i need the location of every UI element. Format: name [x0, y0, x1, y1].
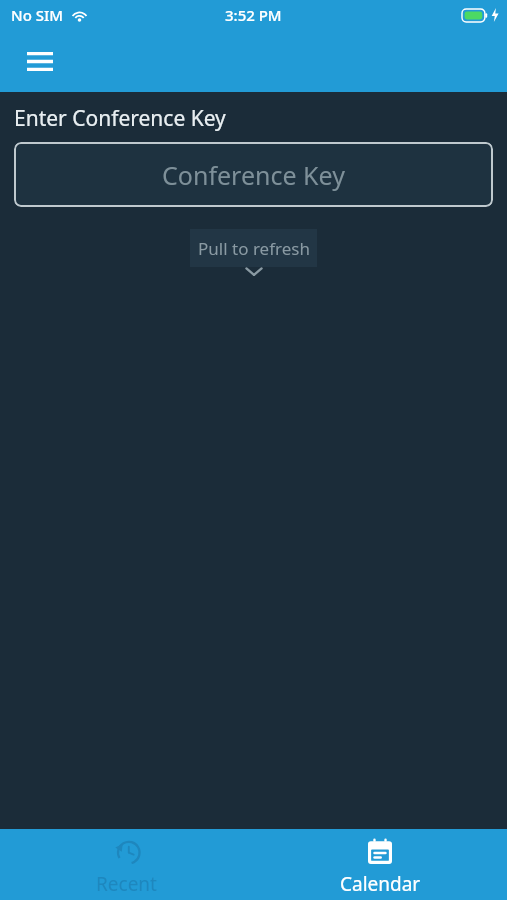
- staticText: Pull to refresh: [198, 237, 310, 260]
- staticText: Recent: [96, 871, 157, 897]
- staticText: 3:52 PM: [225, 5, 282, 25]
- button[interactable]: Calendar: [253, 829, 507, 900]
- staticText: Enter Conference Key: [14, 104, 226, 133]
- button[interactable]: Recent: [0, 829, 253, 900]
- staticText: Calendar: [340, 871, 421, 897]
- staticText: Conference Key: [162, 158, 345, 192]
- staticText: No SIM: [11, 5, 64, 25]
- button[interactable]: Conference Key: [14, 142, 493, 207]
- button[interactable]: Open navigation menu: [14, 35, 66, 87]
